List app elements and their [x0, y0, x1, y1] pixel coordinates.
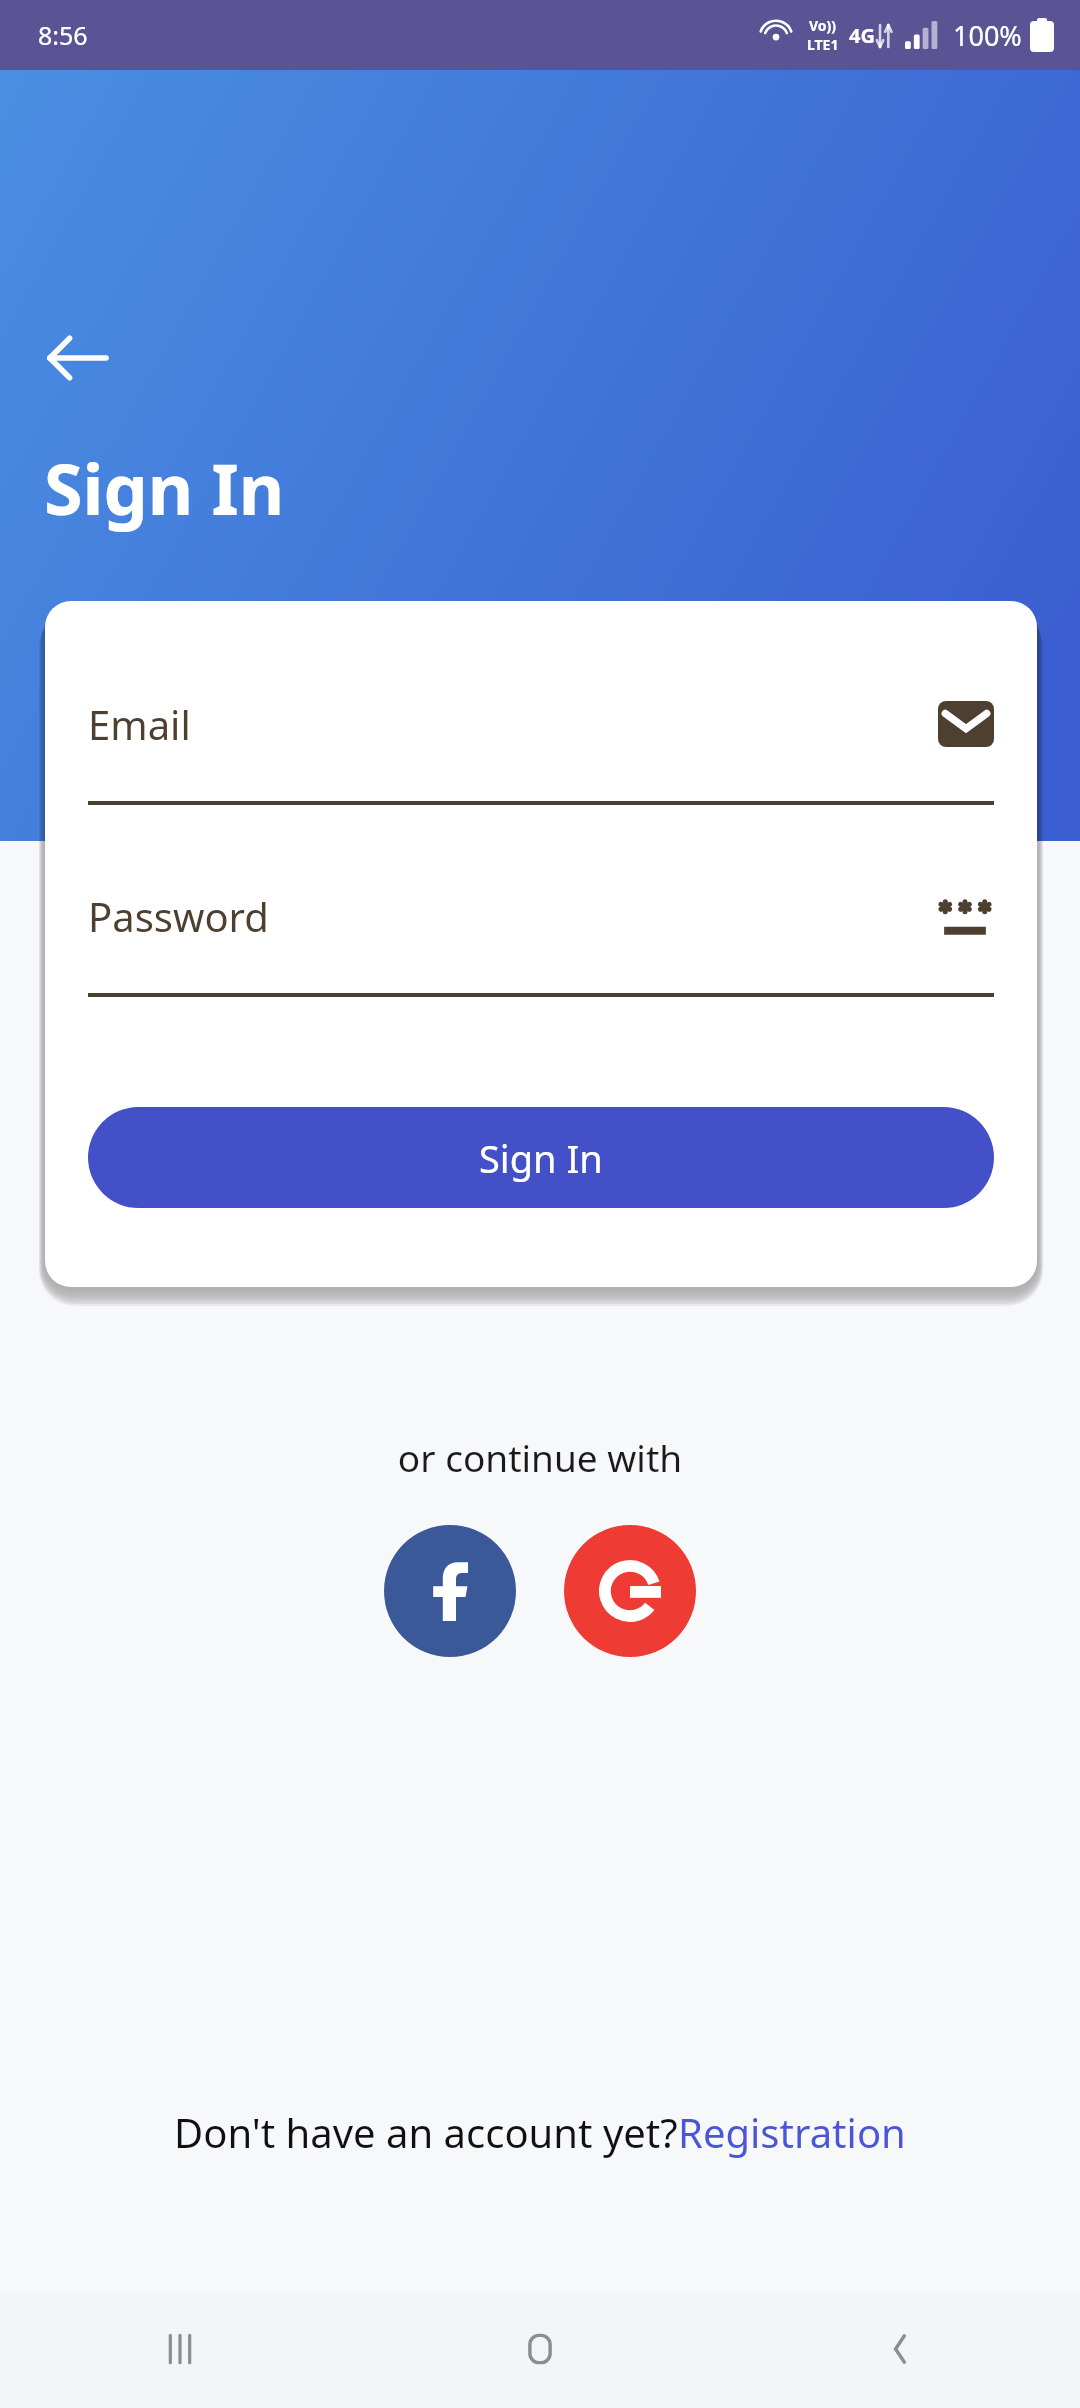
staticText: Vo)) [809, 16, 837, 35]
staticText: 100% [953, 17, 1022, 54]
staticText: Password [88, 889, 269, 943]
staticText: Don't have an account yet? [174, 2105, 678, 2159]
button[interactable]: Back [40, 320, 116, 396]
staticText: Sign In [479, 1132, 603, 1184]
staticText: Registration [678, 2105, 906, 2159]
button[interactable]: Sign In [88, 1107, 994, 1208]
staticText: Email [88, 697, 191, 751]
staticText: 4G [849, 22, 875, 49]
button[interactable]: Home [360, 2290, 720, 2408]
button[interactable]: Email [88, 693, 994, 755]
button[interactable]: Recent apps [0, 2290, 360, 2408]
button[interactable]: Continue with Google [564, 1525, 696, 1657]
staticText: or continue with [0, 1432, 1080, 1482]
staticText: 8:56 [38, 18, 88, 52]
button[interactable]: Password [88, 885, 994, 947]
button[interactable]: Registration [678, 2105, 906, 2159]
staticText: Sign In [44, 440, 285, 535]
button[interactable]: Continue with Facebook [384, 1525, 516, 1657]
staticText: LTE1 [807, 35, 839, 54]
button[interactable]: Back [720, 2290, 1080, 2408]
